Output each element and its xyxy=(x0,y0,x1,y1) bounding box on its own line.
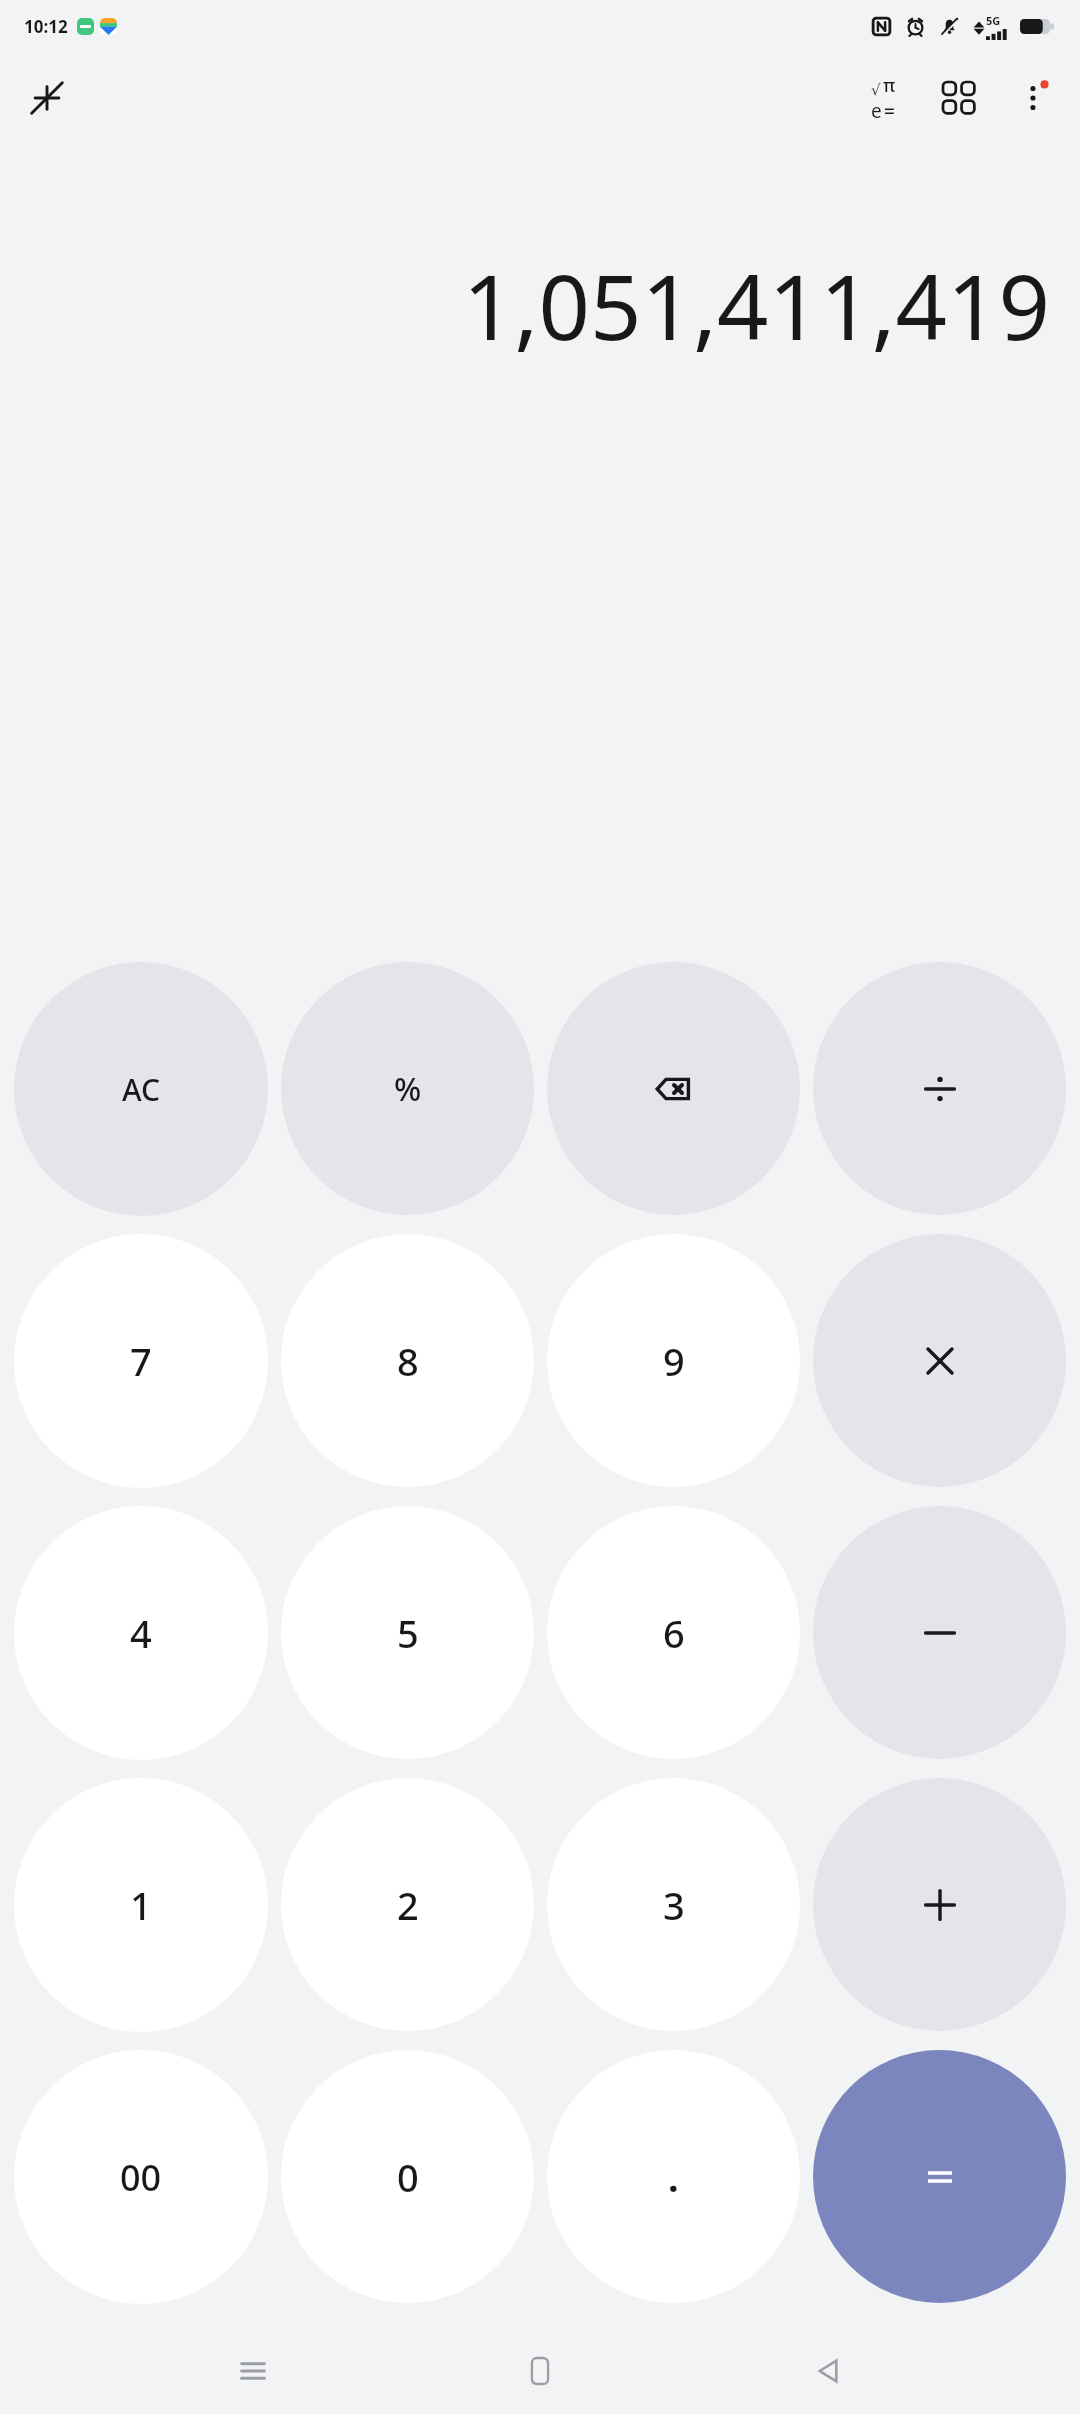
staticText: π xyxy=(883,73,896,98)
button[interactable]: 9 xyxy=(547,1234,800,1487)
staticText: 1,051,411,419 xyxy=(462,244,1050,367)
staticText: 0 xyxy=(397,2151,419,2203)
button[interactable]: 2 xyxy=(281,1778,534,2031)
staticText: 5G xyxy=(986,13,1001,28)
button[interactable]: Back xyxy=(793,2336,863,2406)
button[interactable]: Scientific mode xyxy=(852,67,914,129)
button[interactable]: 0 xyxy=(281,2050,534,2303)
button[interactable]: Backspace xyxy=(547,962,800,1215)
button[interactable]: % xyxy=(281,962,534,1215)
button[interactable]: Decimal point xyxy=(547,2050,800,2303)
button[interactable]: Divide xyxy=(813,962,1066,1215)
button[interactable]: 6 xyxy=(547,1506,800,1759)
staticText: √ xyxy=(871,81,881,98)
staticText: 3 xyxy=(663,1879,685,1931)
staticText: . xyxy=(668,2151,679,2203)
staticText: AC xyxy=(122,1069,161,1110)
button[interactable]: More options xyxy=(1004,67,1066,129)
button[interactable]: 4 xyxy=(14,1506,268,1760)
button[interactable]: 8 xyxy=(281,1234,534,1487)
button[interactable]: 7 xyxy=(14,1234,268,1488)
button[interactable]: Plus xyxy=(813,1778,1066,2031)
staticText: 10:12 xyxy=(24,15,68,38)
staticText: 6 xyxy=(663,1607,685,1659)
button[interactable]: Recent apps xyxy=(218,2336,288,2406)
staticText: 5 xyxy=(397,1607,419,1659)
button[interactable]: 5 xyxy=(281,1506,534,1759)
button[interactable]: Unit converter xyxy=(928,67,990,129)
button[interactable]: Collapse xyxy=(18,69,76,127)
button[interactable]: Home xyxy=(505,2336,575,2406)
staticText: 4 xyxy=(130,1607,152,1659)
button[interactable]: 1 xyxy=(14,1778,268,2032)
button[interactable]: 00 xyxy=(14,2050,268,2304)
button[interactable]: Equals xyxy=(813,2050,1066,2303)
staticText: 9 xyxy=(663,1335,685,1387)
button[interactable]: Minus xyxy=(813,1506,1066,1759)
button[interactable]: 3 xyxy=(547,1778,800,2031)
staticText: 1 xyxy=(130,1879,152,1931)
staticText: = xyxy=(884,98,895,124)
staticText: 7 xyxy=(130,1335,152,1387)
staticText: % xyxy=(394,1067,422,1111)
button[interactable]: Multiply xyxy=(813,1234,1066,1487)
staticText: 8 xyxy=(397,1335,419,1387)
staticText: 2 xyxy=(397,1879,419,1931)
staticText: 00 xyxy=(120,2153,162,2202)
staticText: e xyxy=(871,98,882,124)
button[interactable]: AC xyxy=(14,962,268,1216)
